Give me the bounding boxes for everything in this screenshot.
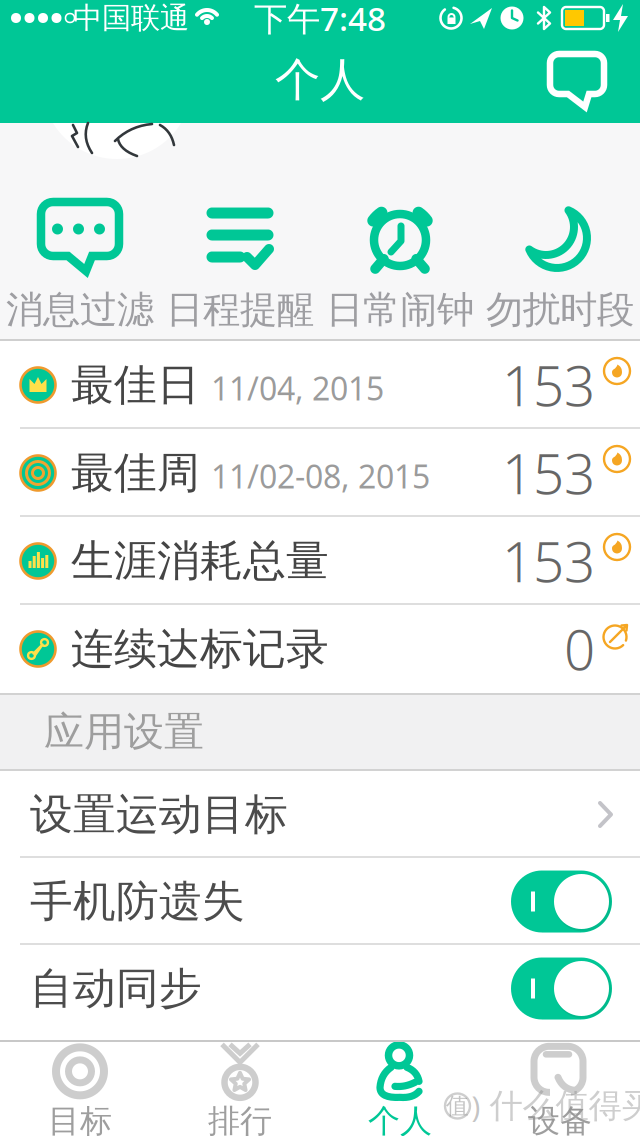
staticText: 153 bbox=[502, 525, 595, 597]
staticText: 勿扰时段 bbox=[486, 287, 634, 333]
staticText: 消息过滤 bbox=[6, 287, 154, 333]
staticText: 设置运动目标 bbox=[30, 788, 288, 841]
button[interactable]: 自动同步 bbox=[511, 957, 612, 1019]
button[interactable]: 设置运动目标 bbox=[0, 771, 640, 858]
staticText: 应用设置 bbox=[44, 707, 204, 756]
staticText: 值 bbox=[446, 1092, 469, 1120]
staticText: 目标 bbox=[48, 1101, 112, 1136]
staticText: 排行 bbox=[208, 1101, 272, 1136]
staticText: 个人 bbox=[368, 1101, 432, 1136]
staticText: 什么值得买 bbox=[489, 1085, 640, 1126]
button[interactable]: 勿扰时段 bbox=[480, 123, 640, 341]
staticText: 日程提醒 bbox=[166, 287, 314, 333]
staticText: 11/04, 2015 bbox=[211, 367, 384, 409]
button[interactable]: 最佳周 bbox=[0, 429, 640, 517]
staticText: 中国联通 bbox=[73, 0, 189, 36]
button[interactable]: 个人 bbox=[320, 1040, 480, 1136]
button[interactable]: 手机防遗失 bbox=[511, 870, 612, 932]
button[interactable]: 目标 bbox=[0, 1040, 160, 1136]
staticText: 设备 bbox=[528, 1101, 592, 1136]
staticText: 153 bbox=[502, 437, 595, 509]
button[interactable]: 设备 bbox=[480, 1040, 640, 1136]
staticText: 11/02-08, 2015 bbox=[211, 455, 430, 497]
staticText: 生涯消耗总量 bbox=[71, 535, 329, 587]
staticText: 日常闹钟 bbox=[326, 287, 474, 333]
button[interactable]: 最佳日 bbox=[0, 341, 640, 429]
button[interactable]: 消息 bbox=[542, 46, 612, 114]
staticText: 153 bbox=[502, 349, 595, 421]
staticText: 手机防遗失 bbox=[30, 875, 245, 928]
button[interactable]: 日程提醒 bbox=[160, 123, 320, 341]
button[interactable]: 生涯消耗总量 bbox=[0, 517, 640, 605]
staticText: 下午7:48 bbox=[254, 0, 386, 40]
button[interactable]: 连续达标记录 bbox=[0, 605, 640, 693]
button[interactable]: 消息过滤 bbox=[0, 123, 160, 341]
staticText: 个人 bbox=[275, 52, 365, 108]
staticText: 最佳周 bbox=[71, 447, 200, 499]
staticText: 最佳日 bbox=[71, 359, 200, 411]
staticText: 连续达标记录 bbox=[71, 623, 329, 675]
button[interactable]: 日常闹钟 bbox=[320, 123, 480, 341]
staticText: 0 bbox=[564, 613, 595, 685]
staticText: 自动同步 bbox=[30, 962, 202, 1015]
staticText: ) bbox=[471, 1086, 480, 1125]
button[interactable]: 排行 bbox=[160, 1040, 320, 1136]
